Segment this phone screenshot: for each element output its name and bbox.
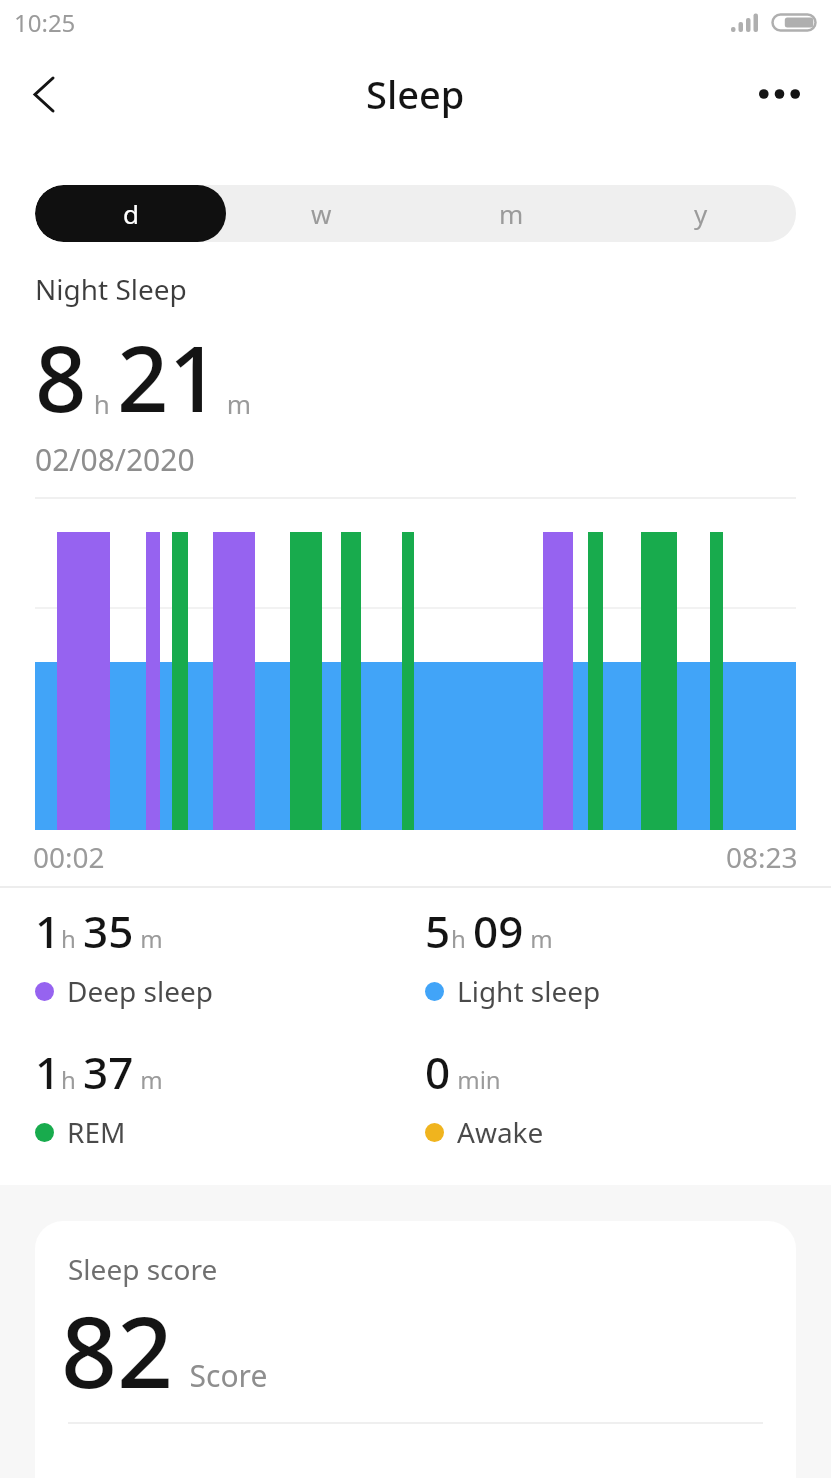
staticText: h (61, 1063, 83, 1096)
staticText: 08:23 (726, 838, 798, 876)
staticText: 8 (35, 316, 87, 439)
staticText: 37 (83, 1042, 134, 1102)
staticText: m (524, 922, 553, 955)
button[interactable]: m (416, 185, 606, 242)
staticText: 1 (35, 901, 61, 961)
staticText: Sleep score (68, 1250, 218, 1288)
staticText: m (499, 196, 524, 231)
button[interactable]: d (35, 185, 226, 242)
staticText: Score (174, 1355, 268, 1396)
staticText: m (134, 1063, 163, 1096)
staticText: 09 (473, 901, 524, 961)
staticText: Sleep (366, 68, 465, 120)
staticText: 02/08/2020 (35, 439, 195, 480)
staticText: 35 (83, 901, 134, 961)
staticText: 82 (61, 1283, 174, 1416)
button[interactable]: y (606, 185, 796, 242)
staticText: REM (67, 1113, 126, 1151)
button[interactable]: Sleep score (35, 1221, 796, 1478)
staticText: h (87, 386, 117, 421)
button[interactable] (22, 72, 66, 116)
staticText: w (311, 196, 332, 231)
button[interactable] (757, 72, 801, 116)
staticText: Awake (457, 1113, 544, 1151)
button[interactable]: w (226, 185, 416, 242)
staticText: m (134, 922, 163, 955)
staticText: m (220, 386, 252, 421)
staticText: h (61, 922, 83, 955)
staticText: 5 (425, 901, 451, 961)
staticText: h (451, 922, 473, 955)
staticText: Deep sleep (67, 972, 213, 1010)
staticText: 1 (35, 1042, 61, 1102)
staticText: Night Sleep (35, 270, 187, 308)
staticText: d (123, 196, 139, 231)
staticText: 0 (425, 1042, 451, 1102)
staticText: 00:02 (33, 838, 105, 876)
staticText: 21 (117, 316, 220, 439)
staticText: 10:25 (14, 6, 76, 39)
staticText: y (694, 196, 708, 231)
staticText: min (451, 1063, 501, 1096)
staticText: Light sleep (457, 972, 601, 1010)
